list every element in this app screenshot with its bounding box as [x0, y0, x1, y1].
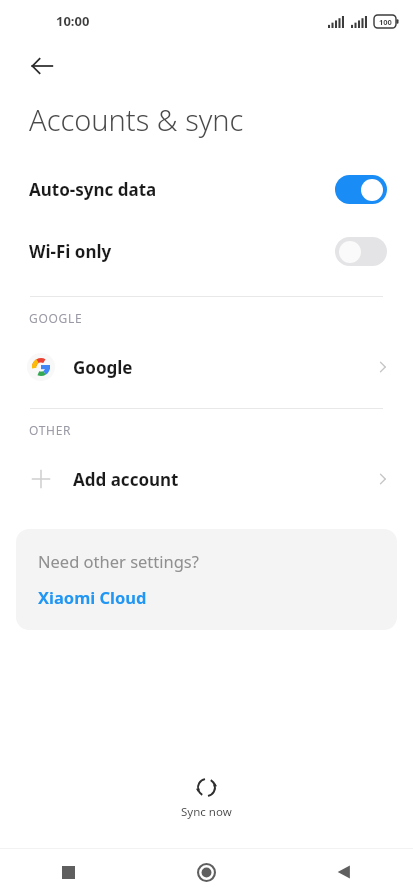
button[interactable]: Back: [275, 848, 413, 896]
staticText: Wi-Fi only: [29, 240, 335, 263]
button[interactable]: Back: [20, 44, 64, 88]
staticText: OTHER: [29, 422, 72, 438]
button[interactable]: Wi-Fi only: [0, 220, 413, 282]
staticText: Google: [73, 356, 373, 379]
button[interactable]: Home: [137, 848, 275, 896]
staticText: GOOGLE: [29, 310, 83, 326]
staticText: Add account: [73, 468, 373, 491]
staticText: Xiaomi Cloud: [38, 586, 147, 608]
button[interactable]: Google: [0, 339, 413, 395]
button[interactable]: Add account: [0, 451, 413, 507]
button[interactable]: Need other settings?: [16, 529, 397, 630]
button[interactable]: Auto-sync data: [0, 158, 413, 220]
staticText: 10:00: [56, 12, 90, 30]
staticText: 100: [379, 17, 392, 27]
staticText: Sync now: [181, 804, 232, 820]
staticText: Need other settings?: [38, 550, 199, 572]
button[interactable]: Recents: [0, 848, 137, 896]
staticText: Auto-sync data: [29, 178, 335, 201]
button[interactable]: Sync now: [0, 768, 413, 830]
staticText: Accounts & sync: [29, 100, 244, 139]
